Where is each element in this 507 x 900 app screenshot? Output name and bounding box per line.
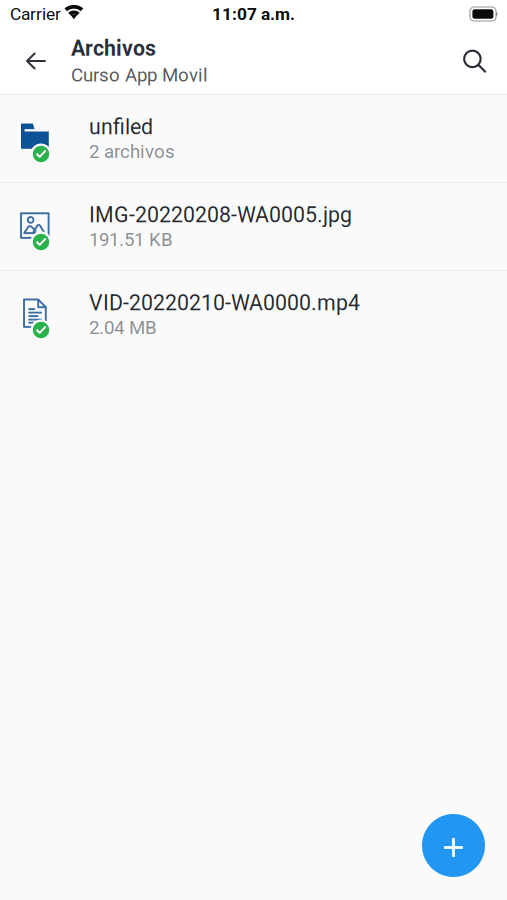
button[interactable]: Search (451, 35, 498, 87)
staticText: Archivos (71, 36, 156, 61)
button[interactable]: unfiled (0, 95, 507, 182)
button[interactable]: Back (14, 35, 58, 87)
button[interactable]: IMG-20220208-WA0005.jpg (0, 183, 507, 270)
staticText: Carrier (10, 4, 61, 24)
staticText: 2 archivos (89, 141, 175, 162)
staticText: 191.51 KB (89, 229, 173, 250)
button[interactable]: Add (422, 814, 485, 877)
button[interactable]: VID-20220210-WA0000.mp4 (0, 271, 507, 358)
staticText: 11:07 a.m. (212, 4, 295, 24)
staticText: Curso App Movil (71, 64, 208, 86)
staticText: unfiled (89, 115, 153, 140)
staticText: 2.04 MB (89, 317, 157, 338)
staticText: IMG-20220208-WA0005.jpg (89, 203, 352, 228)
staticText: VID-20220210-WA0000.mp4 (89, 291, 360, 316)
